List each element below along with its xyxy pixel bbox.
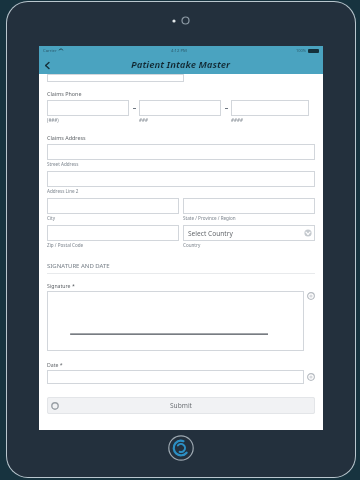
button[interactable] <box>47 144 315 160</box>
button[interactable] <box>47 370 304 384</box>
staticText: Street Address <box>47 161 79 167</box>
staticText: Country <box>183 242 201 248</box>
button[interactable]: Home <box>168 435 194 461</box>
staticText: #### <box>231 117 309 123</box>
button[interactable]: Back <box>39 57 55 73</box>
button[interactable]: Pick date <box>307 373 315 381</box>
button[interactable] <box>139 100 221 116</box>
button[interactable]: Submit <box>47 397 315 414</box>
staticText: Date * <box>47 361 63 368</box>
button[interactable] <box>47 74 184 82</box>
staticText: Signature * <box>47 282 75 289</box>
staticText: Claims Address <box>47 134 86 141</box>
staticText: 100% <box>296 48 307 53</box>
staticText: Select Country <box>188 229 233 238</box>
staticText: ### <box>139 117 231 123</box>
button[interactable] <box>47 100 129 116</box>
staticText: Carrier <box>43 48 57 54</box>
staticText: Patient Intake Master <box>131 58 231 71</box>
staticText: City <box>47 215 56 221</box>
button[interactable]: Clear signature <box>307 292 315 300</box>
staticText: Claims Phone <box>47 90 82 97</box>
button[interactable] <box>47 171 315 187</box>
button[interactable] <box>183 198 315 214</box>
button[interactable] <box>47 291 304 351</box>
button[interactable] <box>47 225 179 241</box>
staticText: 4:12 PM <box>171 48 187 54</box>
button[interactable] <box>231 100 309 116</box>
staticText: (###) <box>47 117 139 123</box>
staticText: Zip / Postal Code <box>47 242 84 248</box>
staticText: SIGNATURE AND DATE <box>47 262 110 270</box>
staticText: State / Province / Region <box>183 215 236 221</box>
staticText: Submit <box>170 401 192 410</box>
button[interactable]: Select Country <box>183 225 315 241</box>
staticText: Address Line 2 <box>47 188 79 194</box>
button[interactable] <box>47 198 179 214</box>
